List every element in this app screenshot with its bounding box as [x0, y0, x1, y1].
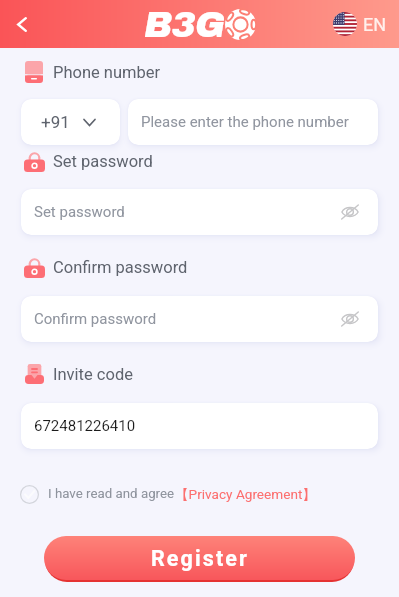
button[interactable]: Please enter the phone number [128, 99, 378, 145]
staticText: +91 [41, 112, 70, 132]
staticText: Set password [34, 203, 125, 221]
staticText: Invite code [53, 365, 133, 384]
staticText: Confirm password [53, 258, 188, 277]
button[interactable]: Set password [21, 189, 378, 235]
staticText: B3G [144, 5, 225, 44]
button[interactable]: Show password [337, 306, 363, 332]
button[interactable]: Show password [337, 199, 363, 225]
button[interactable]: Confirm password [21, 296, 378, 342]
staticText: 【Privacy Agreement】 [175, 486, 316, 503]
staticText: I have read and agree [48, 486, 175, 502]
button[interactable]: +91 [21, 99, 120, 145]
staticText: Please enter the phone number [141, 113, 349, 131]
staticText: EN [363, 14, 387, 35]
staticText: Set password [53, 152, 153, 171]
button[interactable]: Back [5, 7, 39, 41]
button[interactable]: 672481226410 [21, 403, 378, 449]
staticText: Confirm password [34, 310, 157, 328]
button[interactable]: EN [333, 12, 387, 36]
staticText: 672481226410 [34, 417, 136, 435]
button[interactable]: I have read and agree [20, 483, 399, 505]
staticText: Register [151, 546, 249, 571]
button[interactable]: Register [44, 536, 355, 580]
staticText: Phone number [53, 63, 161, 82]
